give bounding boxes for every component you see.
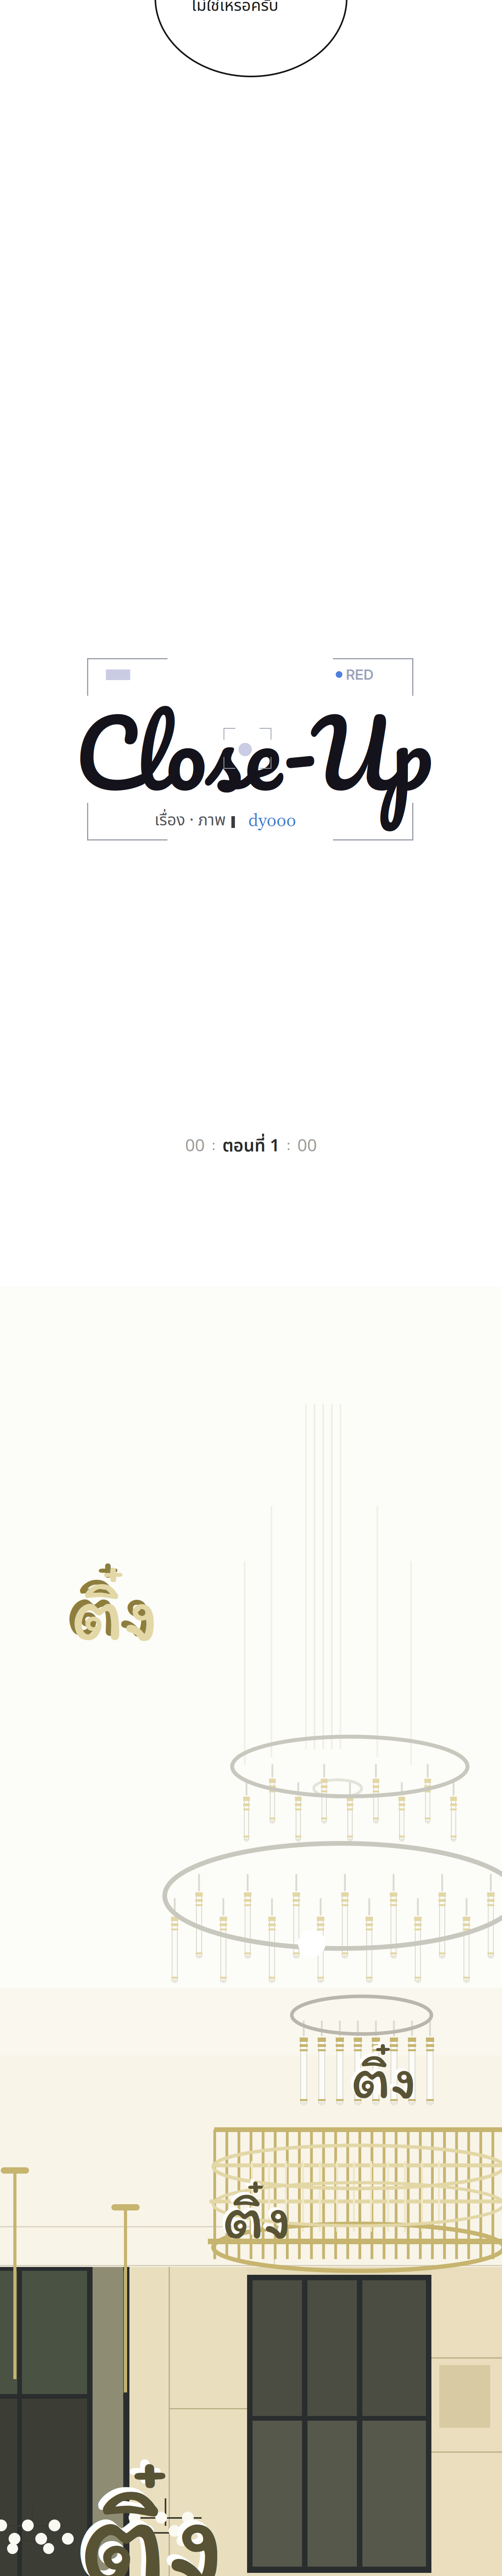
staticText: : — [280, 1136, 297, 1156]
staticText: ไม่ใช่เหรอครับ — [191, 0, 278, 18]
staticText: เรื่อง · ภาพ — [155, 808, 226, 833]
staticText: dyooo — [236, 807, 296, 832]
staticText: ติ๋ง — [75, 2455, 221, 2576]
staticText: ติ๋ง — [351, 2042, 417, 2112]
staticText: Close-Up — [75, 673, 432, 831]
staticText: 00 — [297, 1133, 317, 1159]
staticText: ติ๋ง — [348, 2039, 414, 2110]
staticText: : — [205, 1136, 222, 1156]
staticText: ตอนที่ 1 — [222, 1133, 280, 1159]
staticText: ติ๋ง — [220, 2177, 289, 2251]
staticText: ติ๋ง — [222, 2179, 291, 2254]
staticText: ติ๋ง — [71, 1565, 159, 1659]
staticText: RED — [346, 666, 373, 683]
staticText: ติ๋ง — [79, 2460, 226, 2576]
staticText: 00 — [185, 1133, 205, 1159]
staticText: ติ๋ง — [66, 1561, 154, 1655]
